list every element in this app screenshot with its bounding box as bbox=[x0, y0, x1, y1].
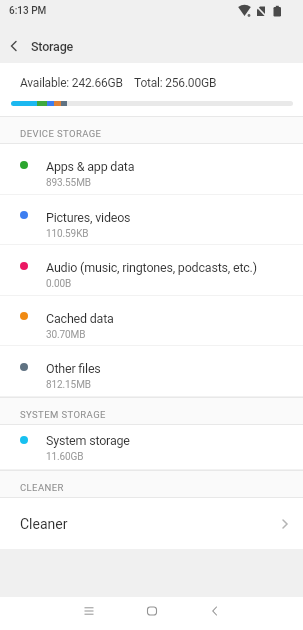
staticText: 893.55MB bbox=[46, 177, 91, 189]
staticText: Available: 242.66GB bbox=[20, 76, 123, 90]
staticText: Total: 256.00GB bbox=[134, 76, 217, 90]
staticText: 0.00B bbox=[46, 278, 72, 290]
staticText: Audio (music, ringtones, podcasts, etc.) bbox=[46, 260, 257, 275]
staticText: 110.59KB bbox=[46, 228, 89, 240]
staticText: Other files bbox=[46, 361, 101, 376]
staticText: Apps & app data bbox=[46, 159, 135, 174]
button[interactable]: Audio (music, ringtones, podcasts, etc.) bbox=[0, 245, 303, 296]
staticText: 6:13 PM bbox=[9, 5, 47, 17]
staticText: 11.60GB bbox=[46, 451, 84, 463]
staticText: System storage bbox=[46, 433, 130, 448]
button[interactable] bbox=[132, 597, 172, 625]
button[interactable]: Cleaner bbox=[0, 498, 303, 549]
staticText: Storage bbox=[31, 39, 74, 54]
staticText: Cleaner bbox=[20, 516, 68, 532]
button[interactable] bbox=[0, 29, 28, 63]
staticText: Pictures, videos bbox=[46, 210, 131, 225]
staticText: CLEANER bbox=[20, 482, 64, 493]
button[interactable]: System storage bbox=[0, 425, 303, 470]
button[interactable]: Cached data bbox=[0, 296, 303, 346]
button[interactable] bbox=[195, 597, 235, 625]
staticText: 30.70MB bbox=[46, 329, 86, 341]
staticText: 812.15MB bbox=[46, 379, 91, 391]
button[interactable]: Other files bbox=[0, 346, 303, 397]
button[interactable]: Apps & app data bbox=[0, 144, 303, 195]
button[interactable]: Pictures, videos bbox=[0, 195, 303, 245]
staticText: SYSTEM STORAGE bbox=[20, 409, 106, 420]
staticText: Cached data bbox=[46, 311, 114, 326]
button[interactable] bbox=[69, 597, 109, 625]
staticText: DEVICE STORAGE bbox=[20, 128, 102, 139]
